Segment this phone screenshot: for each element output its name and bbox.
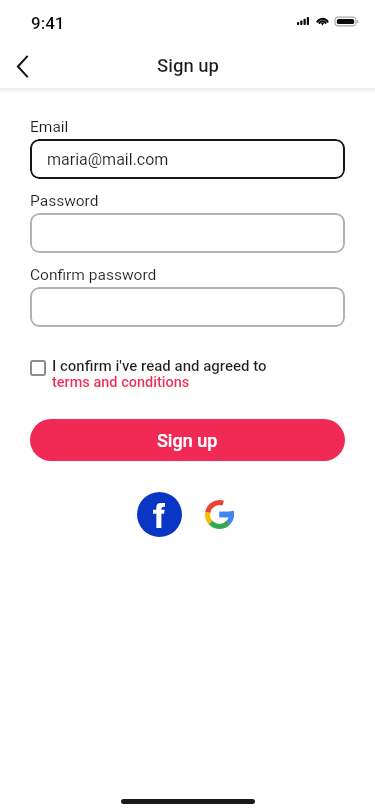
- button[interactable]: Sign up with Facebook: [137, 492, 182, 537]
- button[interactable]: [30, 287, 345, 327]
- button[interactable]: maria@mail.com: [30, 139, 345, 179]
- staticText: Sign up: [157, 430, 218, 451]
- staticText: Sign up: [157, 55, 219, 77]
- staticText: Password: [30, 192, 99, 210]
- button[interactable]: [30, 213, 345, 253]
- button[interactable]: terms and conditions: [52, 374, 190, 391]
- staticText: Email: [30, 118, 69, 136]
- button[interactable]: I confirm I have read the terms: [30, 360, 46, 376]
- staticText: Confirm password: [30, 266, 157, 284]
- button[interactable]: Back: [2, 46, 42, 86]
- button[interactable]: Sign up with Google: [197, 492, 242, 537]
- button[interactable]: Sign up: [30, 419, 345, 461]
- staticText: maria@mail.com: [47, 150, 169, 169]
- staticText: I confirm i've read and agreed to: [52, 357, 267, 375]
- staticText: 9:41: [31, 13, 65, 33]
